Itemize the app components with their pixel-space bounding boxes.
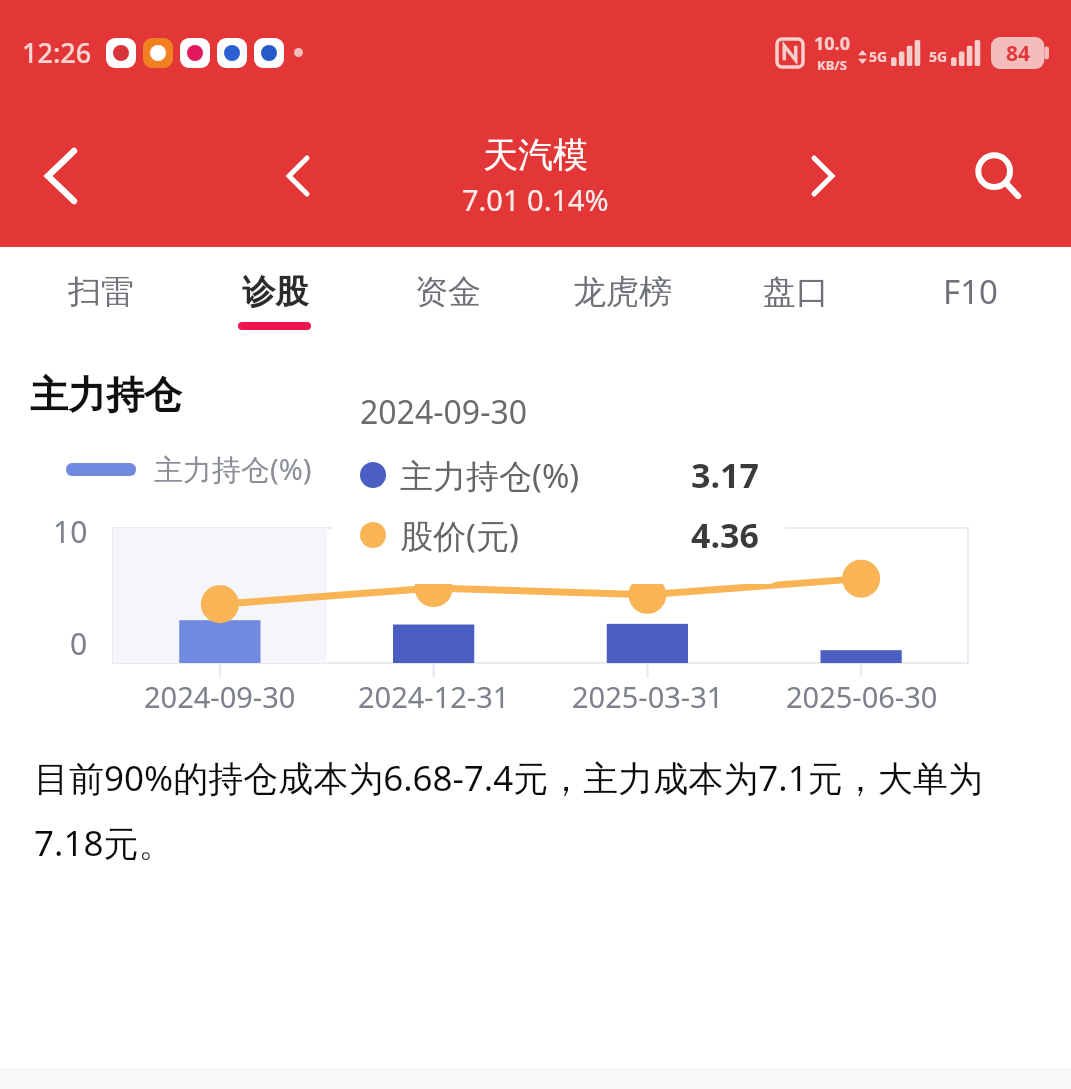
button[interactable]: 扫雷	[14, 247, 187, 353]
staticText: 10	[53, 511, 88, 552]
staticText: 盘口	[763, 271, 829, 313]
staticText: 4.36	[691, 512, 759, 558]
button[interactable]: Next stock	[797, 150, 849, 202]
staticText: 2025-03-31	[572, 677, 724, 716]
staticText: 12:26	[22, 34, 92, 71]
button[interactable]: Previous stock	[272, 150, 324, 202]
staticText: 主力持仓	[30, 371, 182, 419]
button[interactable]: 天汽模	[462, 133, 609, 219]
staticText: 5G	[929, 47, 948, 66]
button[interactable]: 资金	[361, 247, 535, 353]
staticText: 5G	[869, 47, 888, 66]
staticText: 资金	[415, 271, 481, 313]
staticText: 2024-09-30	[144, 677, 296, 716]
staticText: 2024-12-31	[358, 677, 510, 716]
staticText: 2024-09-30	[360, 390, 528, 434]
button[interactable]: Search	[967, 145, 1029, 207]
button[interactable]: 盘口	[709, 247, 883, 353]
staticText: 目前90%的持仓成本为6.68-7.4元，主力成本为7.1元，大单为7.18元。	[34, 754, 1039, 866]
button[interactable]: 龙虎榜	[535, 247, 709, 353]
staticText: F10	[943, 269, 998, 314]
staticText: 84	[1006, 39, 1031, 68]
staticText: 扫雷	[68, 271, 134, 313]
staticText: 3.17	[691, 452, 759, 498]
staticText: 0	[70, 623, 88, 664]
staticText: 诊股	[242, 271, 308, 313]
staticText: 主力持仓(%)	[154, 449, 312, 489]
button[interactable]: F10	[883, 247, 1057, 353]
staticText: 2025-06-30	[786, 677, 938, 716]
staticText: 天汽模	[483, 133, 588, 177]
staticText: 7.01 0.14%	[462, 180, 609, 219]
staticText: 10.0	[814, 31, 850, 56]
staticText: 主力持仓(%)	[400, 453, 580, 498]
staticText: 股价(元)	[400, 513, 519, 558]
button[interactable]: 诊股	[187, 247, 361, 353]
staticText: 龙虎榜	[573, 271, 672, 313]
button[interactable]: Back	[30, 145, 92, 207]
staticText: KB/S	[817, 56, 847, 74]
